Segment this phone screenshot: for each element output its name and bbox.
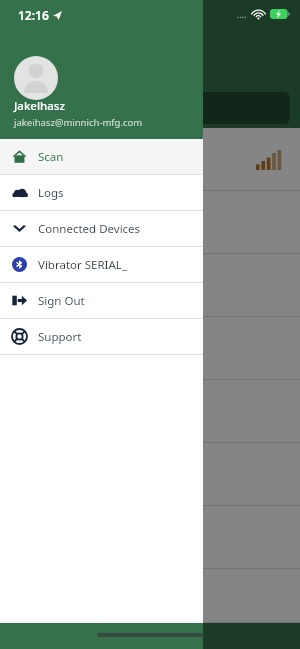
staticText: Logs <box>38 185 64 201</box>
button[interactable]: Sign Out <box>0 283 203 318</box>
button[interactable]: Logs <box>0 175 203 210</box>
button[interactable]: Support <box>0 319 203 354</box>
button[interactable]: Vibrator SERIAL_ <box>0 247 203 282</box>
staticText: jakeihasz@minnich-mfg.com <box>14 116 143 129</box>
staticText: Vibrator SERIAL_ <box>38 257 127 273</box>
staticText: .... <box>237 8 247 20</box>
button[interactable]: Scan <box>0 139 203 174</box>
staticText: Connected Devices <box>38 221 141 237</box>
staticText: Jakelhasz <box>14 98 65 114</box>
staticText: Support <box>38 329 82 345</box>
staticText: Sign Out <box>38 293 85 309</box>
staticText: Scan <box>38 149 64 165</box>
button[interactable]: Connected Devices <box>0 211 203 246</box>
staticText: 12:16 <box>18 7 49 23</box>
